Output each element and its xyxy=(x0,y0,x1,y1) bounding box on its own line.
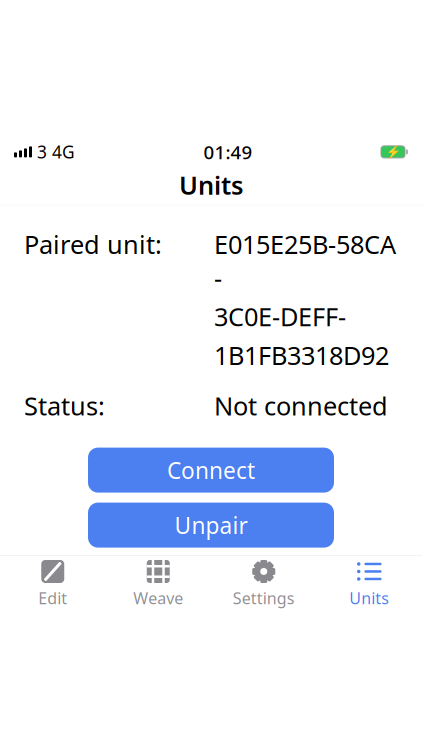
staticText: 3C0E-DEFF- xyxy=(214,300,346,333)
button[interactable]: Units xyxy=(316,558,422,610)
button[interactable]: Weave xyxy=(105,558,211,610)
staticText: Connect xyxy=(167,455,255,485)
staticText: Units xyxy=(349,587,389,609)
button[interactable]: Connect xyxy=(88,448,334,493)
staticText: 1B1FB3318D92 xyxy=(214,338,389,372)
staticText: 01:49 xyxy=(203,139,252,164)
staticText: Status: xyxy=(24,389,105,423)
staticText: Paired unit: xyxy=(24,227,162,261)
staticText: Not connected xyxy=(214,389,388,423)
staticText: Edit xyxy=(38,587,67,609)
staticText: Units xyxy=(179,168,243,202)
staticText: E015E25B-58CA- xyxy=(214,227,396,295)
staticText: ⚡ xyxy=(385,145,400,159)
staticText: 4G xyxy=(52,140,75,163)
staticText: Settings xyxy=(233,587,295,609)
button[interactable]: Edit xyxy=(0,558,105,610)
button[interactable]: Unpair xyxy=(88,503,334,548)
button[interactable]: Settings xyxy=(211,558,316,610)
staticText: Unpair xyxy=(174,510,247,540)
staticText: Weave xyxy=(133,587,183,609)
staticText: 3 xyxy=(37,140,47,163)
